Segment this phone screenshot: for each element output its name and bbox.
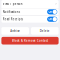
staticText: Archive xyxy=(10,29,20,33)
button[interactable]: Notifications xyxy=(1,8,59,15)
button[interactable]: View 1 person xyxy=(1,0,59,8)
staticText: ON xyxy=(48,10,52,14)
staticText: Block & Remove Contact xyxy=(12,39,48,42)
button[interactable]: Read Receipts xyxy=(1,16,59,23)
staticText: Delete xyxy=(40,29,50,33)
staticText: Notifications xyxy=(3,10,20,14)
staticText: > xyxy=(55,2,57,6)
button[interactable]: Archive xyxy=(1,27,29,35)
staticText: Read Receipts xyxy=(3,17,23,21)
staticText: ON xyxy=(48,17,52,21)
staticText: View 1 person xyxy=(3,2,23,6)
button[interactable]: Delete xyxy=(31,27,59,35)
button[interactable]: Block & Remove Contact xyxy=(1,37,59,44)
